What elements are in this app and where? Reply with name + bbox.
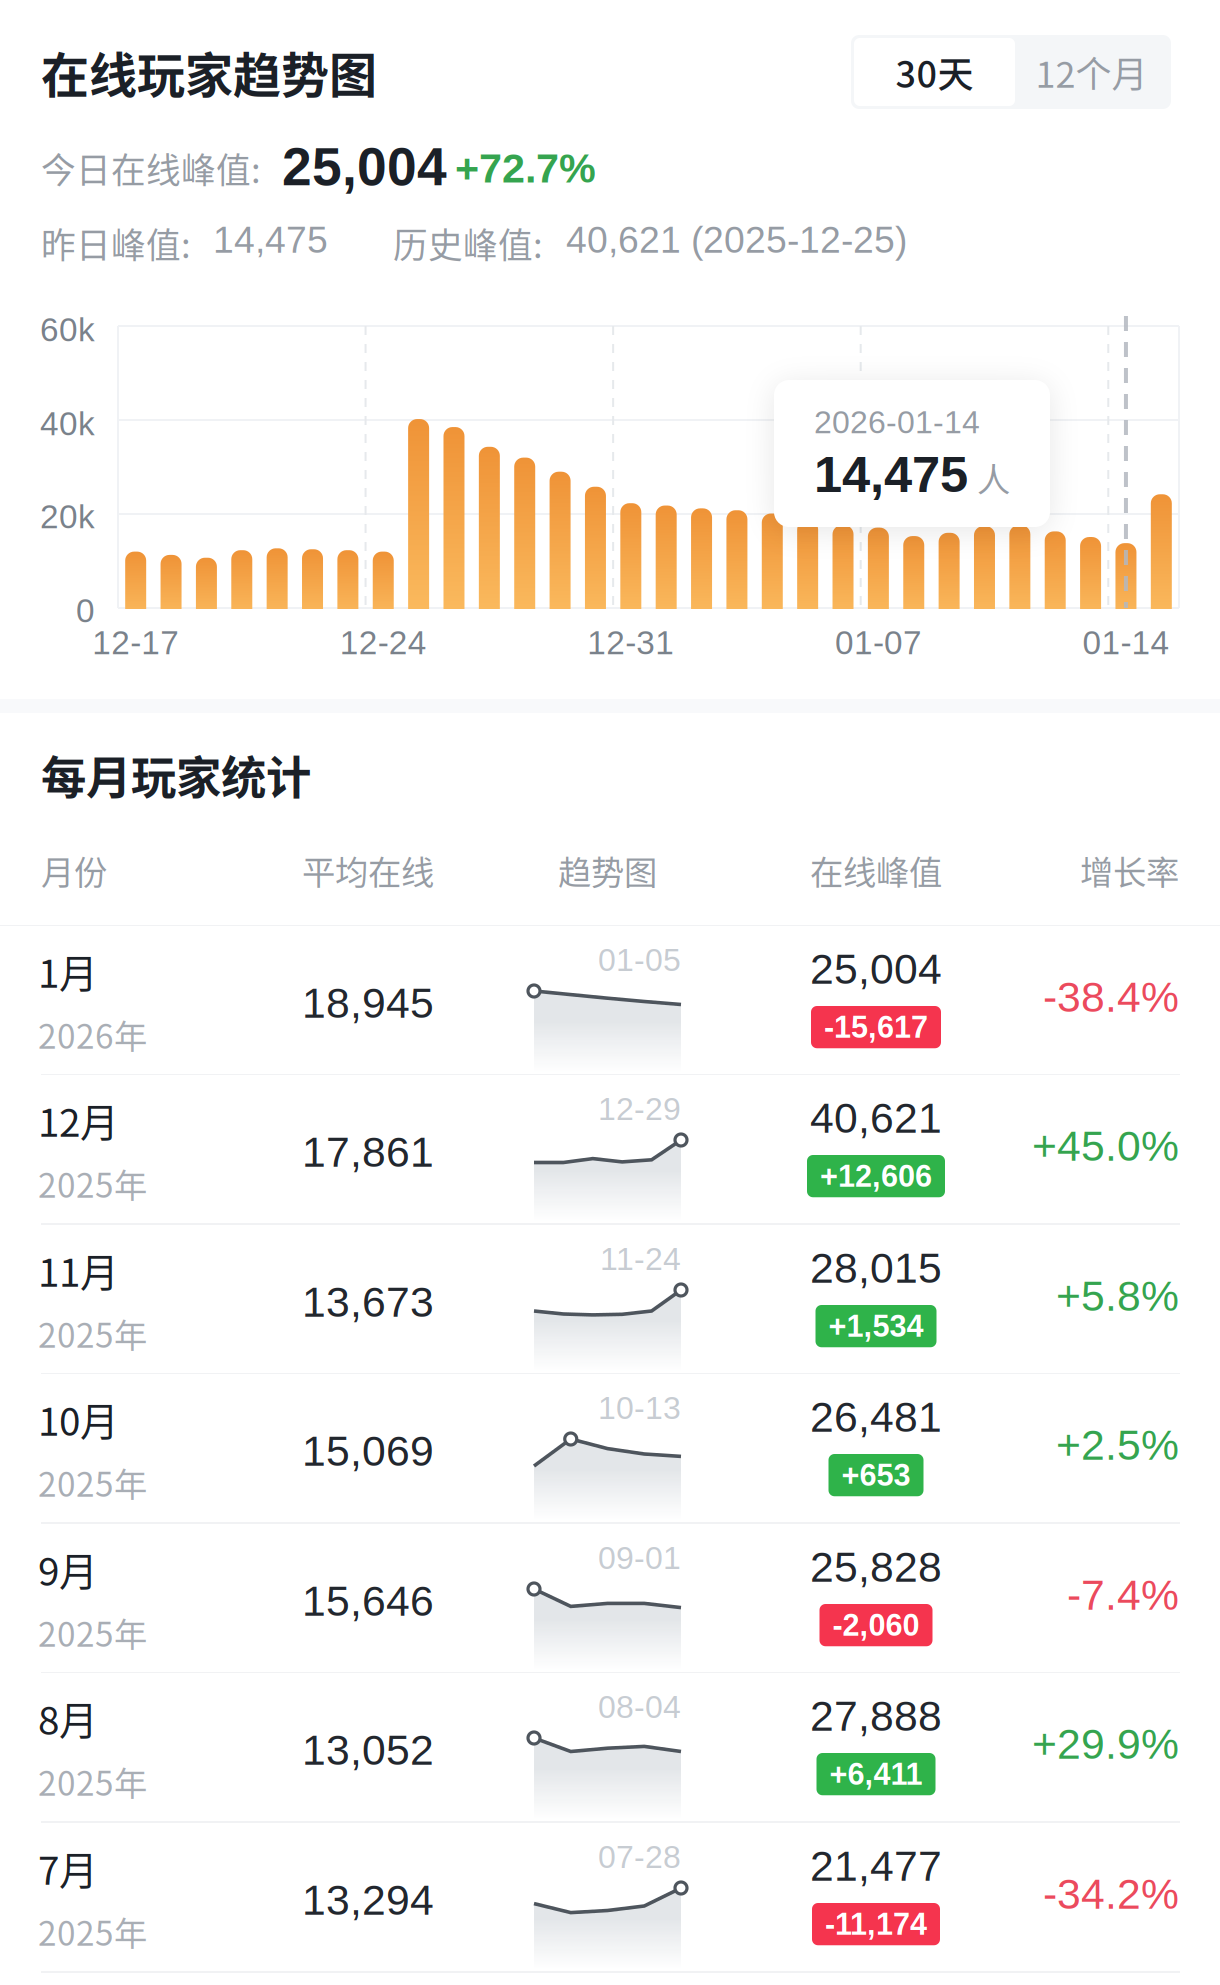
- button[interactable]: 12个月: [1015, 38, 1168, 106]
- staticText: 12-24: [340, 624, 427, 661]
- staticText: 月份: [41, 846, 107, 894]
- staticText: 在线玩家趋势图: [41, 37, 377, 106]
- staticText: 8月: [38, 1690, 98, 1746]
- staticText: 08-04: [598, 1689, 681, 1725]
- staticText: 平均在线: [302, 846, 434, 894]
- staticText: 14,475: [213, 219, 328, 261]
- staticText: 1月: [38, 943, 98, 999]
- staticText: 40,621: [810, 1094, 942, 1142]
- staticText: 09-01: [598, 1540, 681, 1576]
- staticText: -2,060: [832, 1608, 919, 1642]
- staticText: 40k: [40, 405, 95, 442]
- staticText: -34.2%: [1043, 1870, 1179, 1918]
- staticText: +12,606: [820, 1159, 932, 1193]
- staticText: 趋势图: [558, 846, 657, 894]
- button[interactable]: 11月: [0, 0, 1220, 149]
- staticText: 28,015: [810, 1244, 942, 1292]
- button[interactable]: 10月: [0, 0, 1220, 149]
- staticText: 15,069: [302, 1427, 434, 1475]
- staticText: 12-29: [598, 1091, 681, 1127]
- button[interactable]: 12月: [0, 0, 1220, 149]
- staticText: 2025年: [38, 1907, 147, 1955]
- staticText: 2025年: [38, 1757, 147, 1805]
- staticText: 增长率: [1080, 846, 1179, 894]
- button[interactable]: 7月: [0, 0, 1220, 149]
- staticText: +29.9%: [1032, 1720, 1179, 1768]
- staticText: 17,861: [302, 1128, 434, 1176]
- staticText: -7.4%: [1067, 1571, 1179, 1619]
- staticText: 12-17: [92, 624, 179, 661]
- staticText: 13,294: [302, 1876, 434, 1924]
- staticText: 7月: [38, 1840, 98, 1896]
- staticText: 2025年: [38, 1309, 147, 1357]
- staticText: 10-13: [598, 1390, 681, 1426]
- staticText: 9月: [38, 1541, 98, 1597]
- staticText: 15,646: [302, 1577, 434, 1625]
- staticText: +45.0%: [1032, 1122, 1179, 1170]
- staticText: 60k: [40, 311, 95, 348]
- staticText: 25,828: [810, 1543, 942, 1591]
- staticText: +1,534: [828, 1309, 923, 1343]
- staticText: 今日在线峰值:: [41, 143, 261, 193]
- staticText: 01-14: [1082, 624, 1169, 661]
- staticText: 2026-01-14: [814, 404, 980, 440]
- staticText: 18,945: [302, 979, 434, 1027]
- staticText: 27,888: [810, 1692, 942, 1740]
- staticText: 25,004: [282, 137, 447, 197]
- staticText: 01-05: [598, 942, 681, 978]
- staticText: 25,004: [810, 945, 942, 993]
- staticText: 14,475: [814, 446, 968, 503]
- staticText: 20k: [40, 498, 95, 535]
- staticText: 40,621 (2025-12-25): [566, 219, 907, 261]
- staticText: 11-24: [600, 1241, 681, 1277]
- staticText: 07-28: [598, 1839, 681, 1875]
- staticText: 12-31: [587, 624, 674, 661]
- staticText: -38.4%: [1043, 973, 1179, 1021]
- staticText: 30天: [895, 46, 973, 98]
- staticText: 26,481: [810, 1393, 942, 1441]
- staticText: +72.7%: [455, 145, 596, 191]
- staticText: +653: [841, 1458, 910, 1492]
- staticText: 10月: [38, 1391, 119, 1447]
- button[interactable]: 1月: [0, 0, 1220, 149]
- staticText: 12个月: [1035, 46, 1147, 98]
- staticText: 人: [977, 453, 1010, 502]
- button[interactable]: 9月: [0, 0, 1220, 149]
- staticText: 21,477: [810, 1842, 942, 1890]
- button[interactable]: 8月: [0, 0, 1220, 149]
- staticText: 历史峰值:: [393, 218, 543, 268]
- staticText: 01-07: [835, 624, 922, 661]
- staticText: +2.5%: [1056, 1421, 1179, 1469]
- staticText: 11月: [38, 1242, 119, 1298]
- staticText: 2025年: [38, 1608, 147, 1656]
- button[interactable]: 30天: [854, 38, 1015, 106]
- staticText: 2026年: [38, 1010, 147, 1058]
- staticText: -15,617: [824, 1010, 928, 1044]
- staticText: 0: [76, 592, 95, 629]
- staticText: 每月玩家统计: [41, 742, 311, 808]
- staticText: +5.8%: [1056, 1272, 1179, 1320]
- staticText: -11,174: [825, 1907, 927, 1941]
- staticText: 在线峰值: [810, 846, 942, 894]
- staticText: 13,052: [302, 1726, 434, 1774]
- staticText: +6,411: [829, 1757, 922, 1791]
- staticText: 13,673: [302, 1278, 434, 1326]
- staticText: 2025年: [38, 1458, 147, 1506]
- staticText: 12月: [38, 1092, 119, 1148]
- staticText: 2025年: [38, 1159, 147, 1207]
- staticText: 昨日峰值:: [41, 218, 191, 268]
